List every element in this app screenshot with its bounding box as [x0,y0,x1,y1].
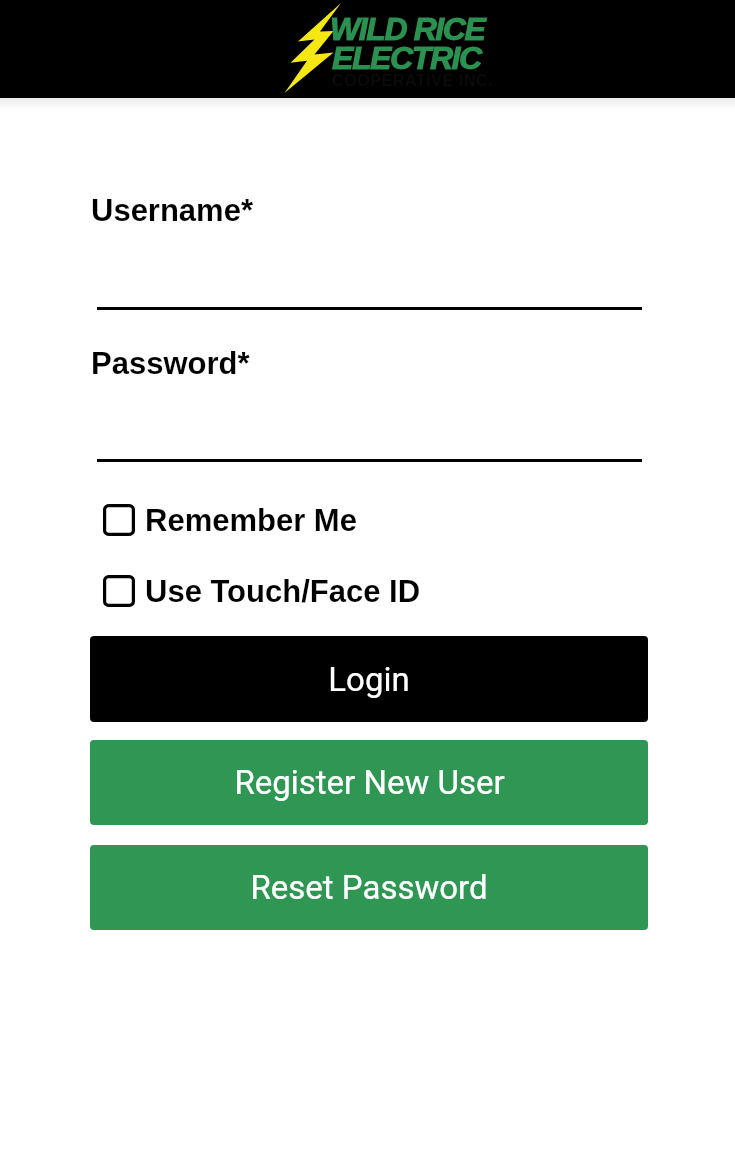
button[interactable]: Password* [97,407,642,462]
staticText: Remember Me [145,503,357,538]
staticText: Reset Password [250,868,488,907]
staticText: Login [328,660,410,699]
button[interactable]: Username* [97,255,642,310]
button[interactable]: Login [90,636,648,722]
staticText: WILD RICE [330,11,485,47]
button[interactable]: Use Touch/Face ID [0,565,735,617]
staticText: COOPERATIVE INC. [332,72,494,90]
button[interactable]: Reset Password [90,845,648,930]
staticText: Register New User [234,763,505,802]
other: Wild Rice Electric Cooperative Inc. [283,0,500,97]
button[interactable]: Register New User [90,740,648,825]
staticText: Use Touch/Face ID [145,574,421,609]
staticText: Username* [91,193,253,228]
staticText: Password* [91,346,250,381]
button[interactable]: Remember Me [0,494,735,546]
staticText: ELECTRIC [332,40,481,76]
